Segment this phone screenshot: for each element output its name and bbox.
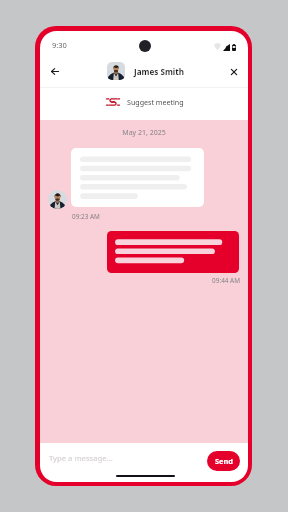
staticText: 09:23 AM [72,212,100,221]
staticText: Type a message... [49,453,113,463]
staticText: James Smith [134,66,184,77]
staticText: May 21, 2025 [40,128,248,138]
staticText: 09:44 AM [40,276,240,285]
staticText: Send [215,456,233,466]
button[interactable]: Back [44,61,65,82]
button[interactable]: James Smith [107,62,184,80]
button[interactable]: Close [224,62,244,82]
staticText: 9:30 [52,40,67,50]
button[interactable] [71,148,204,207]
button[interactable]: Suggest meeting [40,86,248,118]
button[interactable]: Send [207,451,240,471]
button[interactable] [107,231,239,273]
staticText: Suggest meeting [127,97,184,107]
